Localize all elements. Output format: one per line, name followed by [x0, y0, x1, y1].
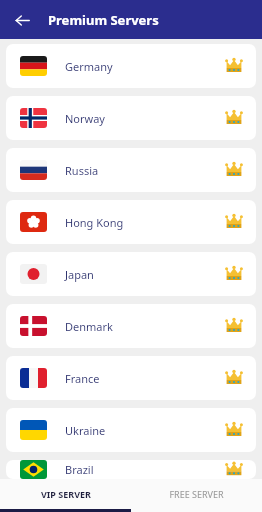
- staticText: VIP SERVER: [41, 488, 91, 500]
- button[interactable]: Ukraine: [6, 408, 256, 452]
- staticText: France: [65, 371, 100, 386]
- staticText: Germany: [65, 59, 113, 74]
- staticText: Premium Servers: [48, 11, 159, 29]
- staticText: Russia: [65, 163, 99, 178]
- button[interactable]: Hong Kong: [6, 200, 256, 244]
- button[interactable]: Denmark: [6, 304, 256, 348]
- staticText: Hong Kong: [65, 215, 124, 230]
- staticText: Japan: [65, 267, 94, 282]
- staticText: FREE SERVER: [169, 488, 224, 500]
- staticText: Norway: [65, 111, 105, 126]
- button[interactable]: France: [6, 356, 256, 400]
- button[interactable]: VIP SERVER: [0, 479, 131, 509]
- button[interactable]: Germany: [6, 44, 256, 88]
- button[interactable]: Back: [8, 6, 36, 34]
- button[interactable]: Japan: [6, 252, 256, 296]
- staticText: Brazil: [65, 462, 94, 477]
- button[interactable]: Russia: [6, 148, 256, 192]
- button[interactable]: Norway: [6, 96, 256, 140]
- button[interactable]: FREE SERVER: [131, 479, 262, 509]
- staticText: Denmark: [65, 319, 113, 334]
- staticText: Ukraine: [65, 423, 106, 438]
- button[interactable]: Brazil: [6, 460, 256, 479]
